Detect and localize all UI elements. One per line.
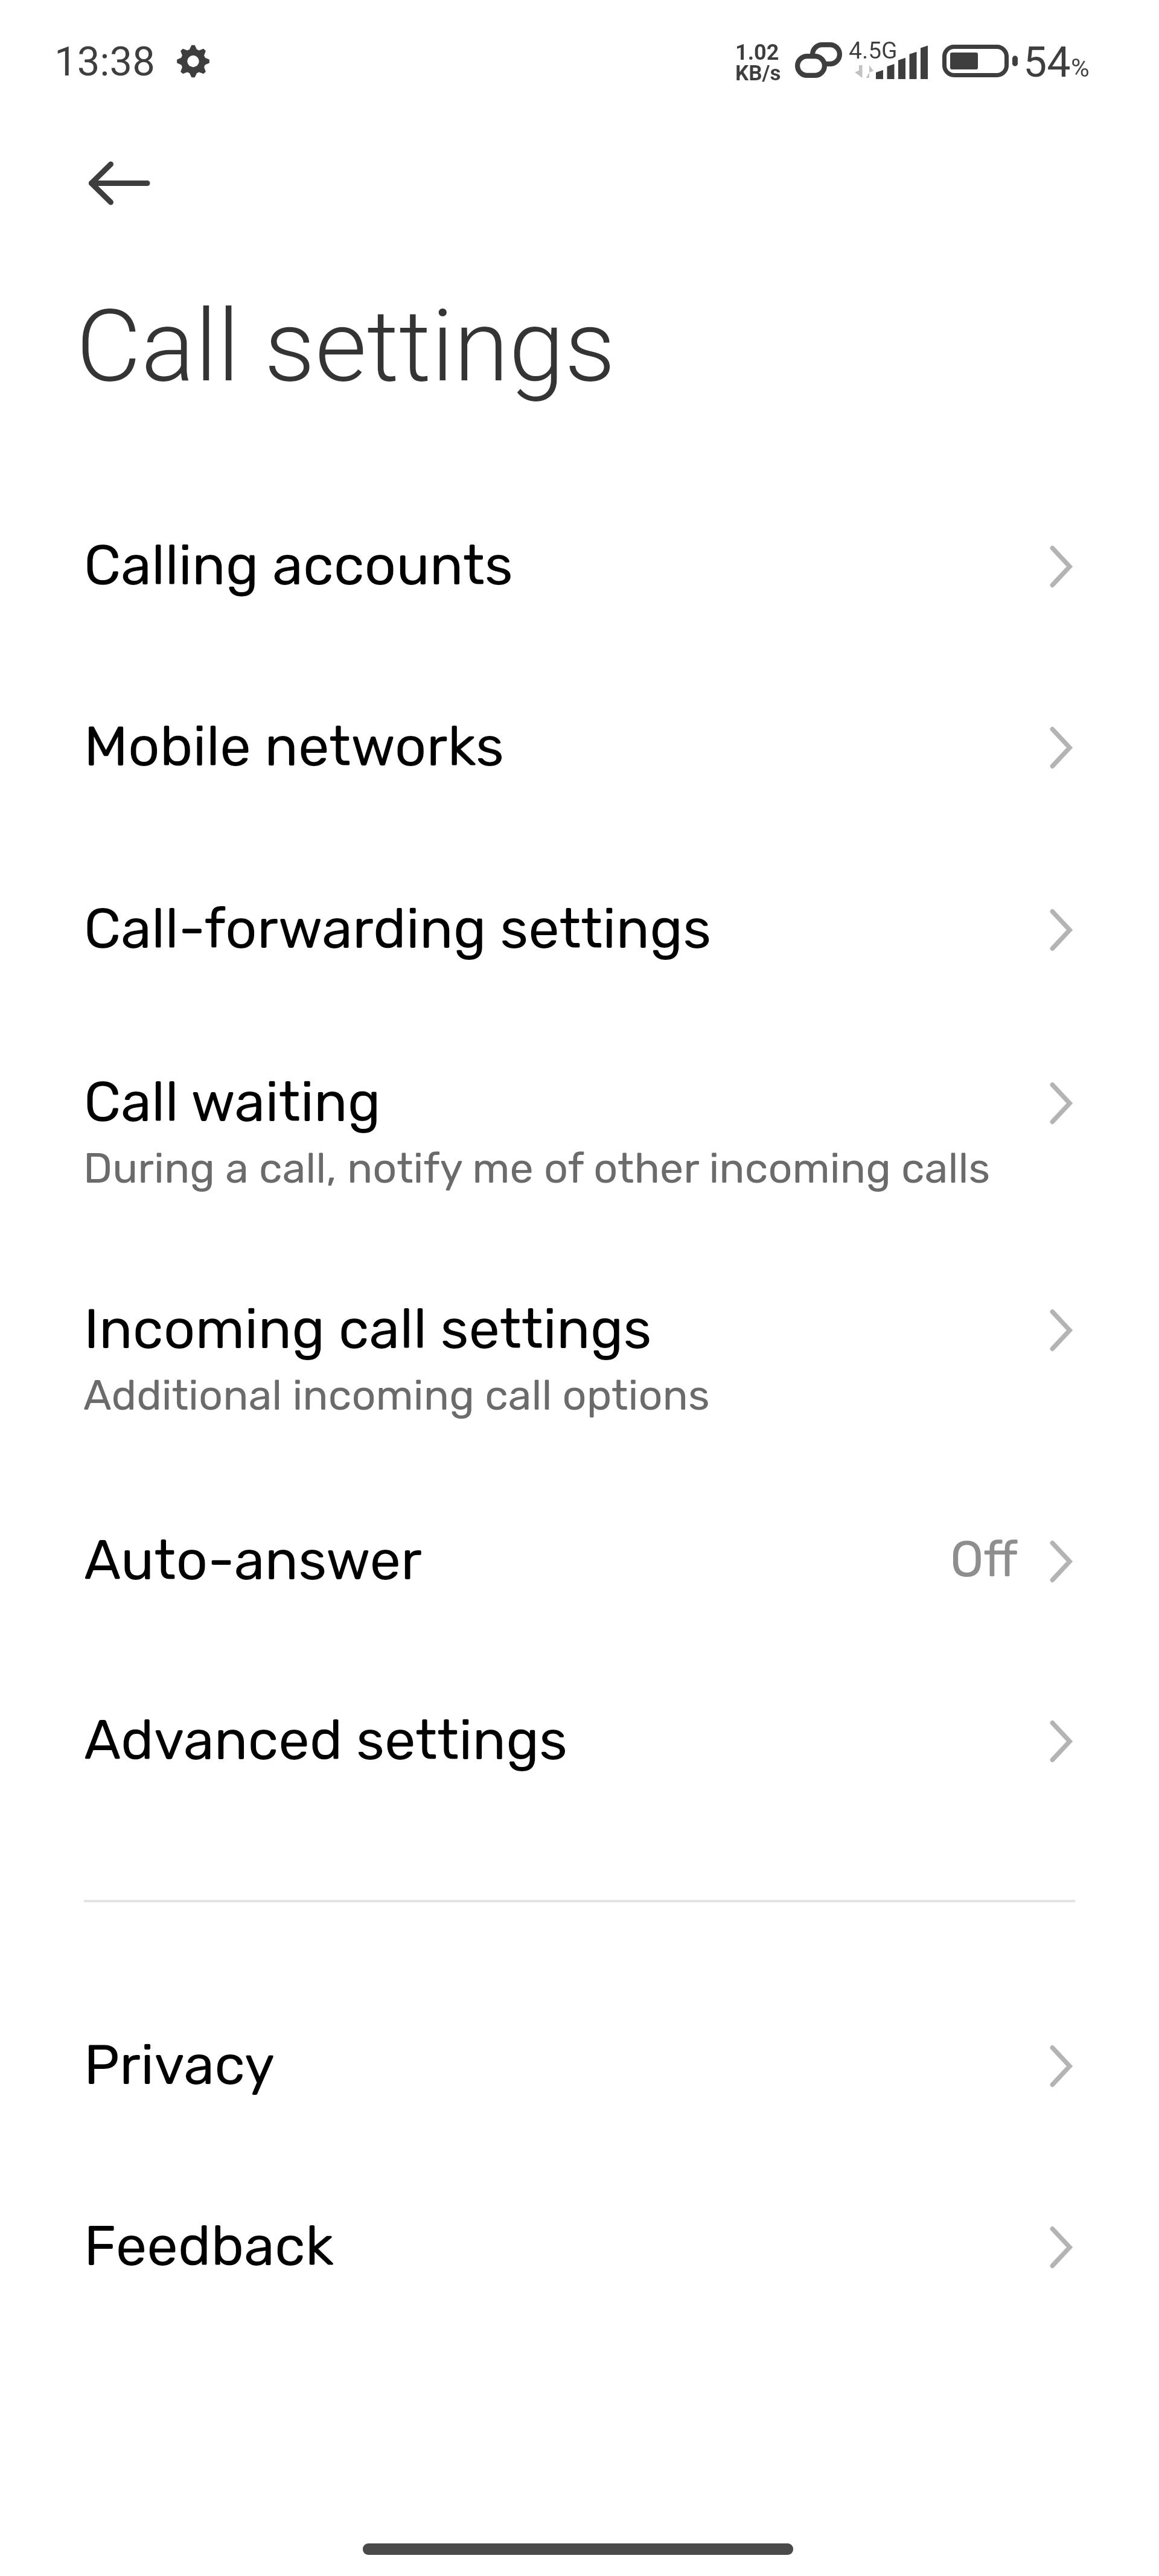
- button[interactable]: Mobile networks: [0, 655, 1159, 837]
- staticText: Mobile networks: [84, 714, 505, 779]
- button[interactable]: Incoming call settings: [0, 1242, 1159, 1469]
- staticText: 54: [1023, 37, 1071, 87]
- staticText: Off: [950, 1530, 1018, 1588]
- staticText: Call-forwarding settings: [84, 896, 712, 962]
- staticText: 4.5G: [849, 37, 898, 65]
- staticText: Call settings: [76, 287, 616, 405]
- button[interactable]: Feedback: [0, 2155, 1159, 2336]
- staticText: Additional incoming call options: [83, 1370, 710, 1421]
- staticText: Call waiting: [84, 1069, 381, 1135]
- staticText: Calling accounts: [84, 532, 513, 598]
- staticText: Advanced settings: [84, 1707, 568, 1773]
- staticText: Privacy: [84, 2032, 275, 2098]
- staticText: Incoming call settings: [84, 1296, 652, 1362]
- other: Settings: [177, 45, 209, 77]
- button[interactable]: Call waiting: [0, 1015, 1159, 1242]
- staticText: %: [1071, 53, 1090, 83]
- staticText: During a call, notify me of other incomi…: [83, 1143, 991, 1194]
- button[interactable]: Advanced settings: [0, 1649, 1159, 1830]
- button[interactable]: Calling accounts: [0, 474, 1159, 655]
- staticText: KB/s: [735, 61, 781, 86]
- staticText: Feedback: [84, 2213, 334, 2279]
- button[interactable]: Back: [53, 142, 135, 225]
- button[interactable]: Call-forwarding settings: [0, 837, 1159, 1015]
- button[interactable]: Privacy: [0, 1974, 1159, 2155]
- staticText: 1.02: [735, 40, 779, 65]
- staticText: Auto-answer: [84, 1527, 422, 1593]
- button[interactable]: Auto-answer: [0, 1469, 1159, 1649]
- staticText: 13:38: [54, 38, 155, 86]
